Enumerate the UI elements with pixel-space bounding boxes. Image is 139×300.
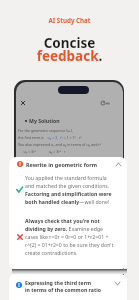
staticText: Always check that you're not dividing by…	[25, 217, 116, 256]
staticText: Expressing the third term in terms of th…	[25, 279, 101, 294]
button[interactable]: Close	[19, 99, 27, 107]
button[interactable]: Expressing the third term in terms of th…	[9, 274, 127, 300]
staticText: You applied the standard formula and mat…	[25, 174, 116, 205]
staticText: Concise	[0, 34, 139, 52]
button[interactable]: History	[100, 100, 106, 106]
button[interactable]: Collapse	[116, 163, 121, 166]
staticText: My Solution	[29, 117, 60, 124]
staticText: the first term is u₀ = 3, r² = 1 × 1² · …	[18, 135, 82, 140]
button[interactable]: Expand	[115, 282, 120, 285]
staticText: For the geometric sequence (uₙ),	[18, 128, 74, 133]
staticText: u₁ = 3r² u₂ = 3r³ · r	[18, 149, 66, 154]
staticText: Rewrite in geometric form	[26, 161, 97, 168]
button[interactable]: Settings	[105, 100, 111, 106]
staticText: You also expressed u₁ and u₂ in terms of…	[18, 142, 102, 147]
button[interactable]: Rewrite in geometric form	[9, 157, 127, 171]
staticText: AI Study Chat	[0, 16, 139, 24]
staticText: feedback.	[0, 47, 139, 65]
